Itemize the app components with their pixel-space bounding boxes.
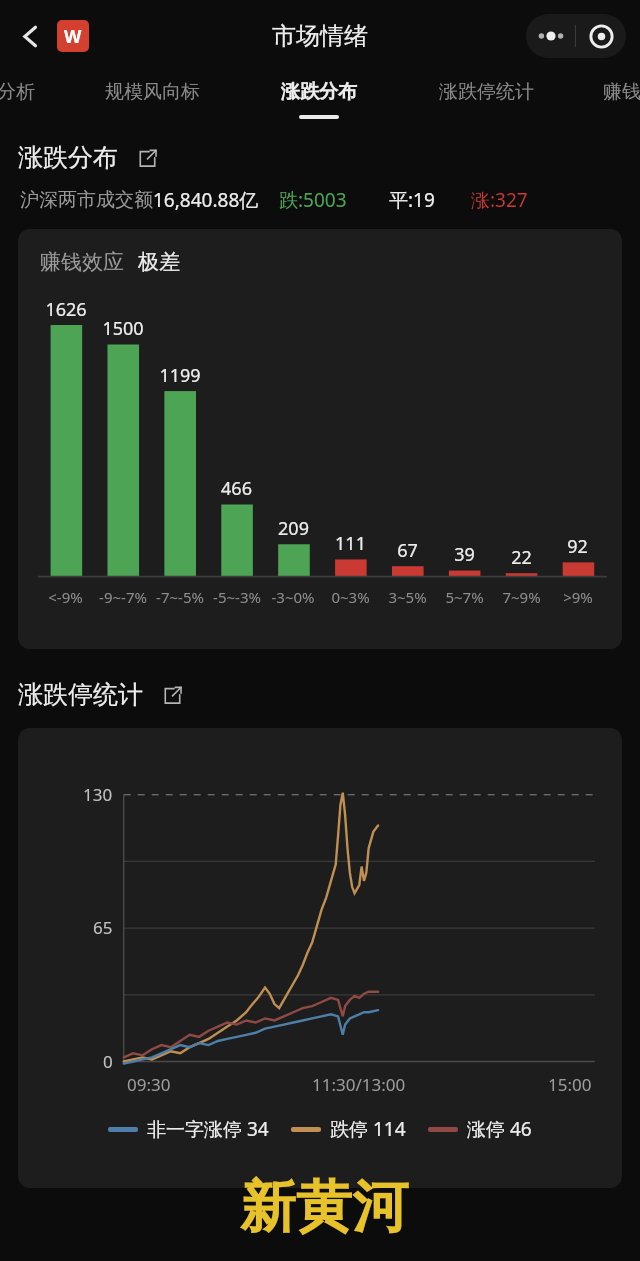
staticText: 466 [221, 476, 252, 501]
staticText: 涨:327 [471, 187, 528, 213]
staticText: 22 [511, 545, 532, 570]
button[interactable]: More options and close [526, 14, 626, 58]
button[interactable]: 涨跌停统计 [431, 72, 541, 132]
button[interactable]: 非一字涨停 34 [108, 1116, 269, 1142]
staticText: -5~-3% [213, 587, 261, 607]
staticText: >9% [563, 587, 593, 607]
staticText: 涨跌分布 [18, 142, 118, 173]
staticText: 0 [103, 1050, 113, 1073]
staticText: 涨跌停统计 [439, 80, 534, 104]
staticText: 新黄河 [240, 1172, 408, 1243]
staticText: 39 [454, 542, 475, 567]
staticText: 15:00 [548, 1073, 592, 1096]
button[interactable]: 跌停 114 [291, 1116, 406, 1142]
staticText: 非一字涨停 34 [147, 1116, 269, 1142]
staticText: 16,840.88亿 [153, 187, 259, 213]
staticText: 1500 [102, 316, 144, 341]
staticText: W [64, 24, 82, 49]
button[interactable]: Back [6, 12, 54, 60]
button[interactable]: 涨停 46 [428, 1116, 532, 1142]
staticText: 0~3% [331, 587, 370, 607]
button[interactable]: 赚钱 [597, 72, 640, 132]
staticText: 7~9% [502, 587, 541, 607]
staticText: 跌停 114 [330, 1116, 406, 1142]
staticText: <-9% [48, 587, 83, 607]
staticText: 67 [397, 538, 418, 563]
staticText: 65 [93, 916, 113, 939]
staticText: 规模风向标 [105, 80, 200, 104]
staticText: 市场情绪 [272, 21, 368, 51]
staticText: 209 [278, 516, 309, 541]
staticText: 1626 [45, 297, 87, 322]
staticText: 1199 [159, 363, 201, 388]
staticText: 111 [335, 531, 366, 556]
button[interactable]: 分析 [0, 72, 41, 132]
staticText: 赚钱效应 [40, 249, 124, 275]
staticText: -7~-5% [156, 587, 204, 607]
button[interactable]: 涨跌分布 [274, 72, 364, 132]
button[interactable]: Open detail [132, 143, 162, 173]
staticText: 11:30/13:00 [312, 1073, 406, 1096]
staticText: 分析 [0, 80, 35, 104]
button[interactable]: 130 [18, 728, 622, 1188]
staticText: 涨停 46 [467, 1116, 532, 1142]
staticText: -3~0% [271, 587, 315, 607]
staticText: 跌:5003 [279, 187, 347, 213]
staticText: 5~7% [445, 587, 484, 607]
staticText: 赚钱 [603, 80, 640, 104]
staticText: 极差 [138, 249, 180, 275]
button[interactable]: 规模风向标 [97, 72, 207, 132]
staticText: -9~-7% [99, 587, 147, 607]
button[interactable]: Open detail [157, 680, 187, 710]
staticText: 3~5% [388, 587, 427, 607]
staticText: 09:30 [127, 1073, 171, 1096]
button[interactable]: 赚钱效应 [18, 229, 622, 649]
staticText: 92 [567, 534, 588, 559]
staticText: 涨跌停统计 [18, 679, 143, 710]
staticText: 涨跌分布 [281, 80, 357, 104]
staticText: 沪深两市成交额 [20, 188, 153, 212]
staticText: 平:19 [389, 187, 435, 213]
button[interactable]: Weibo [57, 20, 89, 52]
staticText: 130 [83, 783, 113, 806]
